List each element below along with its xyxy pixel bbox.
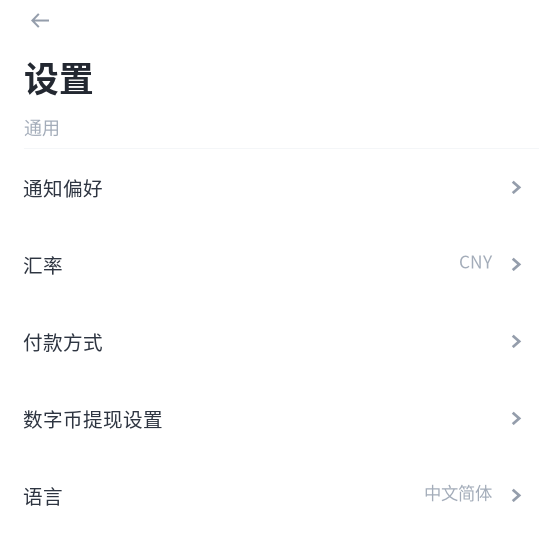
button[interactable]: 通知偏好	[0, 149, 539, 226]
button[interactable]: Back	[20, 0, 62, 39]
staticText: CNY	[459, 248, 492, 274]
staticText: 语言	[23, 481, 63, 510]
staticText: 通知偏好	[23, 173, 103, 202]
staticText: 汇率	[23, 250, 63, 279]
staticText: 中文简体	[424, 479, 492, 505]
staticText: 数字币提现设置	[23, 404, 163, 433]
button[interactable]: 付款方式	[0, 303, 539, 380]
staticText: 设置	[24, 52, 94, 102]
button[interactable]: 数字币提现设置	[0, 380, 539, 457]
staticText: 通用	[24, 114, 60, 140]
button[interactable]: 语言	[0, 457, 539, 534]
staticText: 付款方式	[23, 327, 103, 356]
button[interactable]: 汇率	[0, 226, 539, 303]
